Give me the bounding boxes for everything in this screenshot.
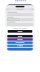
button[interactable]: Apple Pay (7, 35, 33, 37)
button[interactable]: More payment options (7, 48, 33, 50)
staticText: options (14, 0, 25, 2)
button[interactable]: Pay with card (7, 38, 33, 41)
button[interactable]: Pay now (6, 30, 34, 33)
button[interactable]: Pay with bank transfer (7, 41, 33, 44)
button[interactable]: Pay with wallet (7, 45, 33, 47)
